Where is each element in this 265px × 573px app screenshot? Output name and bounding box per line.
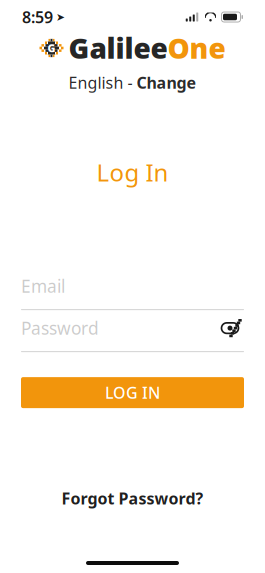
button[interactable]: English - — [62, 69, 202, 96]
staticText: G — [47, 41, 55, 55]
staticText: English - — [68, 72, 136, 93]
staticText: Forgot Password? — [61, 488, 203, 509]
staticText: Galilee — [68, 29, 167, 67]
button[interactable]: LOG IN — [21, 377, 244, 408]
button[interactable]: Show password — [216, 316, 244, 340]
staticText: ➤ — [56, 11, 65, 23]
staticText: One — [167, 29, 225, 67]
staticText: Change — [136, 72, 196, 93]
button[interactable]: Forgot Password? — [51, 483, 213, 514]
staticText: LOG IN — [105, 382, 160, 403]
staticText: Email — [21, 275, 65, 298]
staticText: Log In — [96, 156, 168, 188]
staticText: Password — [21, 317, 99, 340]
staticText: 8:59 — [22, 6, 53, 28]
